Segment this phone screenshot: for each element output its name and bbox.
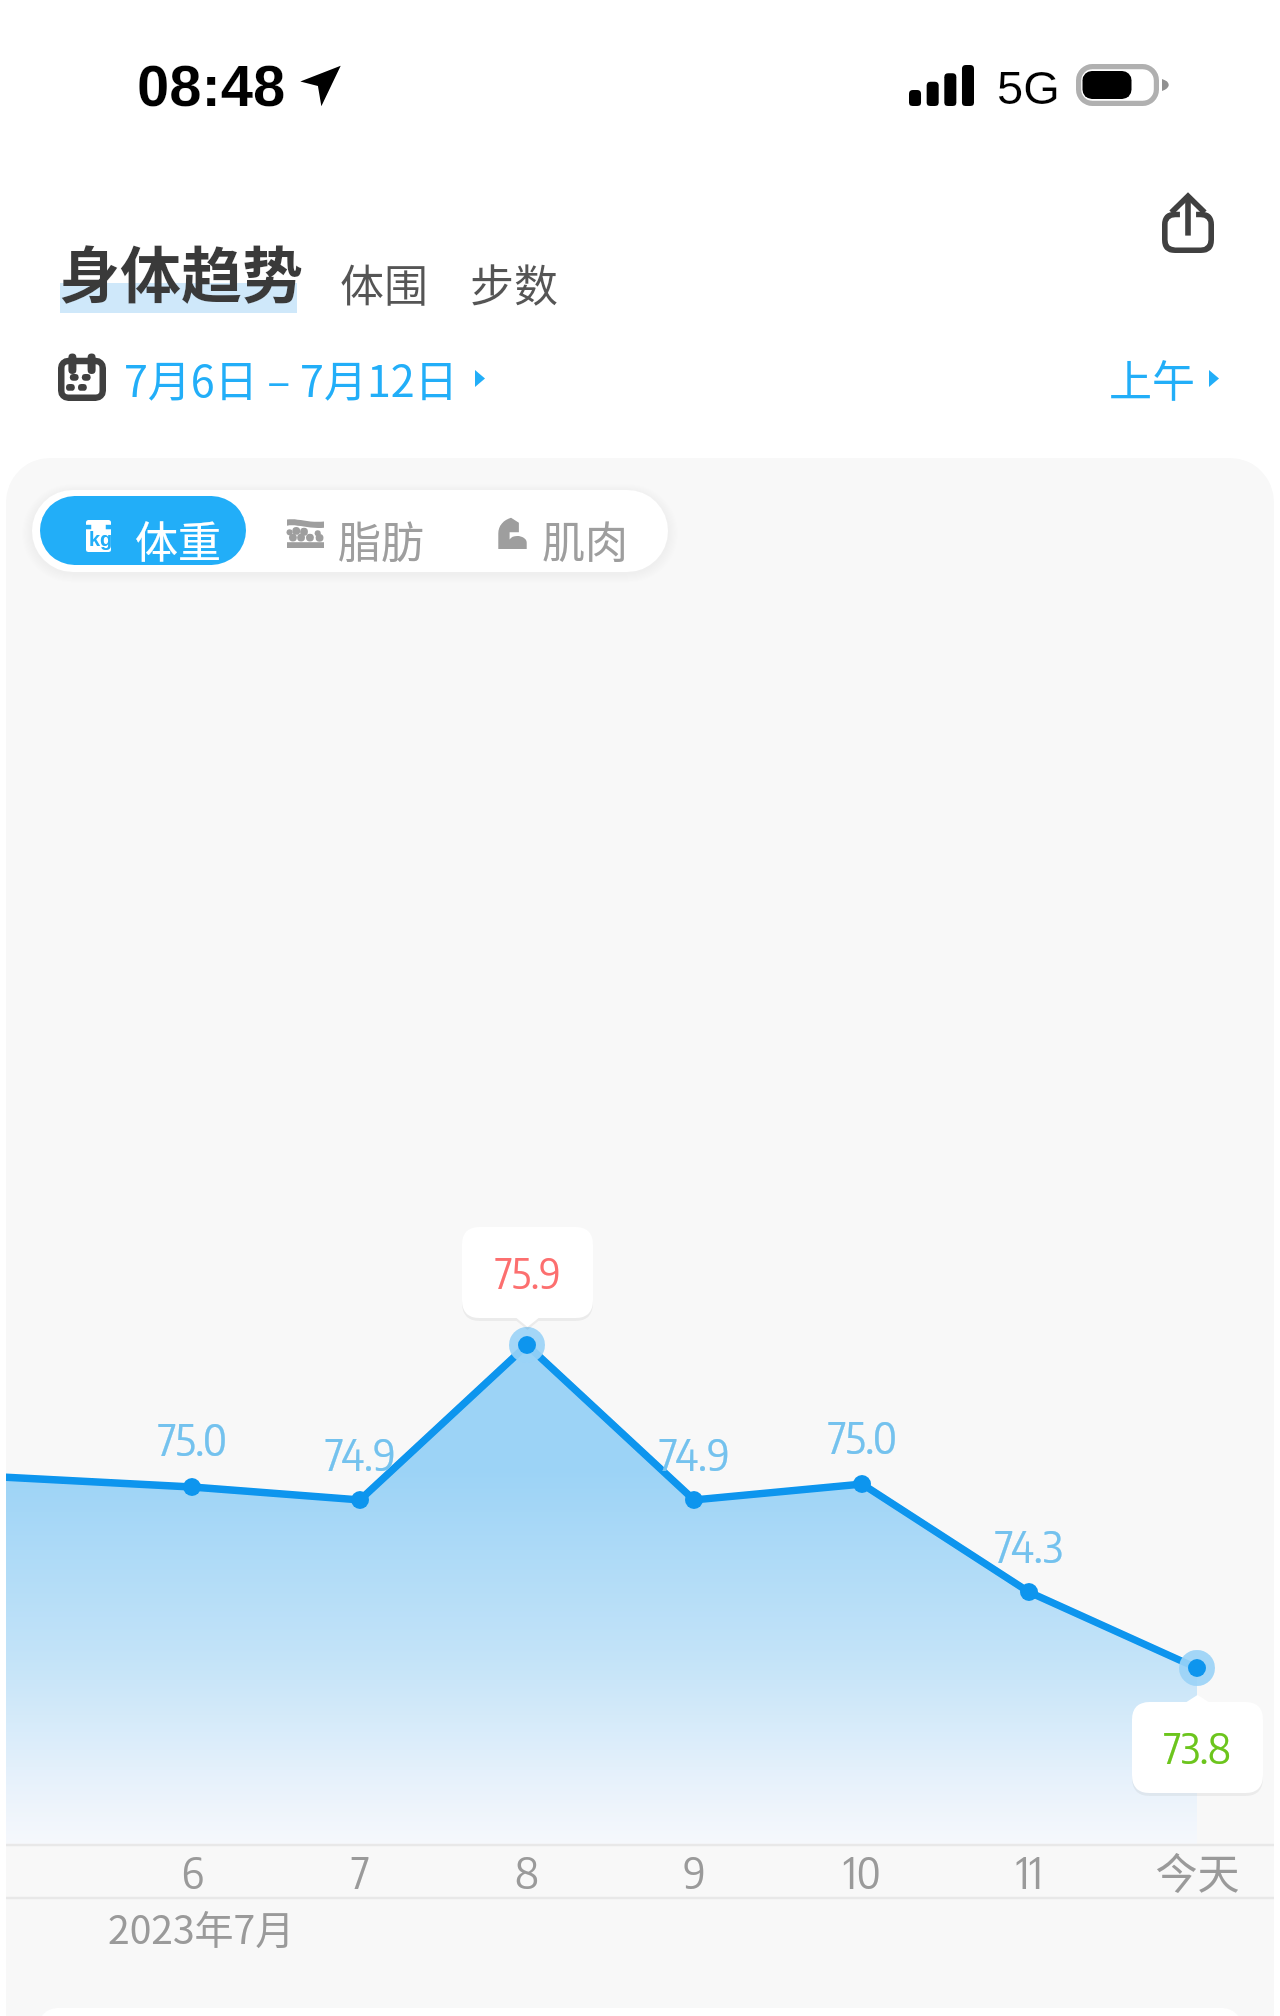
- staticText: 73.8: [1164, 1721, 1231, 1773]
- button[interactable]: Share: [1146, 182, 1230, 266]
- button[interactable]: kg: [40, 496, 246, 565]
- staticText: 2023年7月: [108, 1899, 295, 1955]
- staticText: 9: [683, 1844, 706, 1899]
- staticText: 10: [843, 1844, 881, 1899]
- staticText: 体围: [340, 251, 428, 315]
- button[interactable]: 肌肉: [486, 490, 666, 572]
- staticText: 75.0: [828, 1409, 897, 1464]
- staticText: 步数: [470, 251, 558, 315]
- button[interactable]: 身体趋势: [59, 227, 304, 315]
- staticText: 11: [1016, 1844, 1043, 1899]
- staticText: 74.9: [325, 1426, 396, 1481]
- staticText: 7月6日 – 7月12日: [124, 347, 458, 409]
- staticText: 脂肪: [338, 508, 424, 570]
- staticText: 体重: [135, 508, 221, 565]
- button[interactable]: 步数: [461, 247, 567, 319]
- staticText: 08:48: [137, 53, 286, 118]
- staticText: 上午: [1109, 347, 1195, 409]
- button[interactable]: 脂肪: [275, 490, 447, 572]
- staticText: 今天: [1155, 1840, 1240, 1901]
- staticText: 74.9: [659, 1426, 730, 1481]
- button[interactable]: 体围: [331, 247, 437, 319]
- button[interactable]: 上午: [1109, 343, 1219, 413]
- staticText: 7: [351, 1844, 370, 1899]
- staticText: 肌肉: [542, 508, 628, 570]
- staticText: 5G: [997, 61, 1060, 114]
- staticText: kg: [89, 528, 113, 550]
- button[interactable]: 7月6日 – 7月12日: [58, 343, 485, 413]
- staticText: 75.0: [158, 1411, 227, 1466]
- staticText: 身体趋势: [59, 227, 304, 315]
- staticText: 75.9: [495, 1246, 561, 1298]
- staticText: 74.3: [995, 1518, 1063, 1573]
- staticText: 6: [181, 1844, 204, 1899]
- staticText: 8: [515, 1844, 539, 1899]
